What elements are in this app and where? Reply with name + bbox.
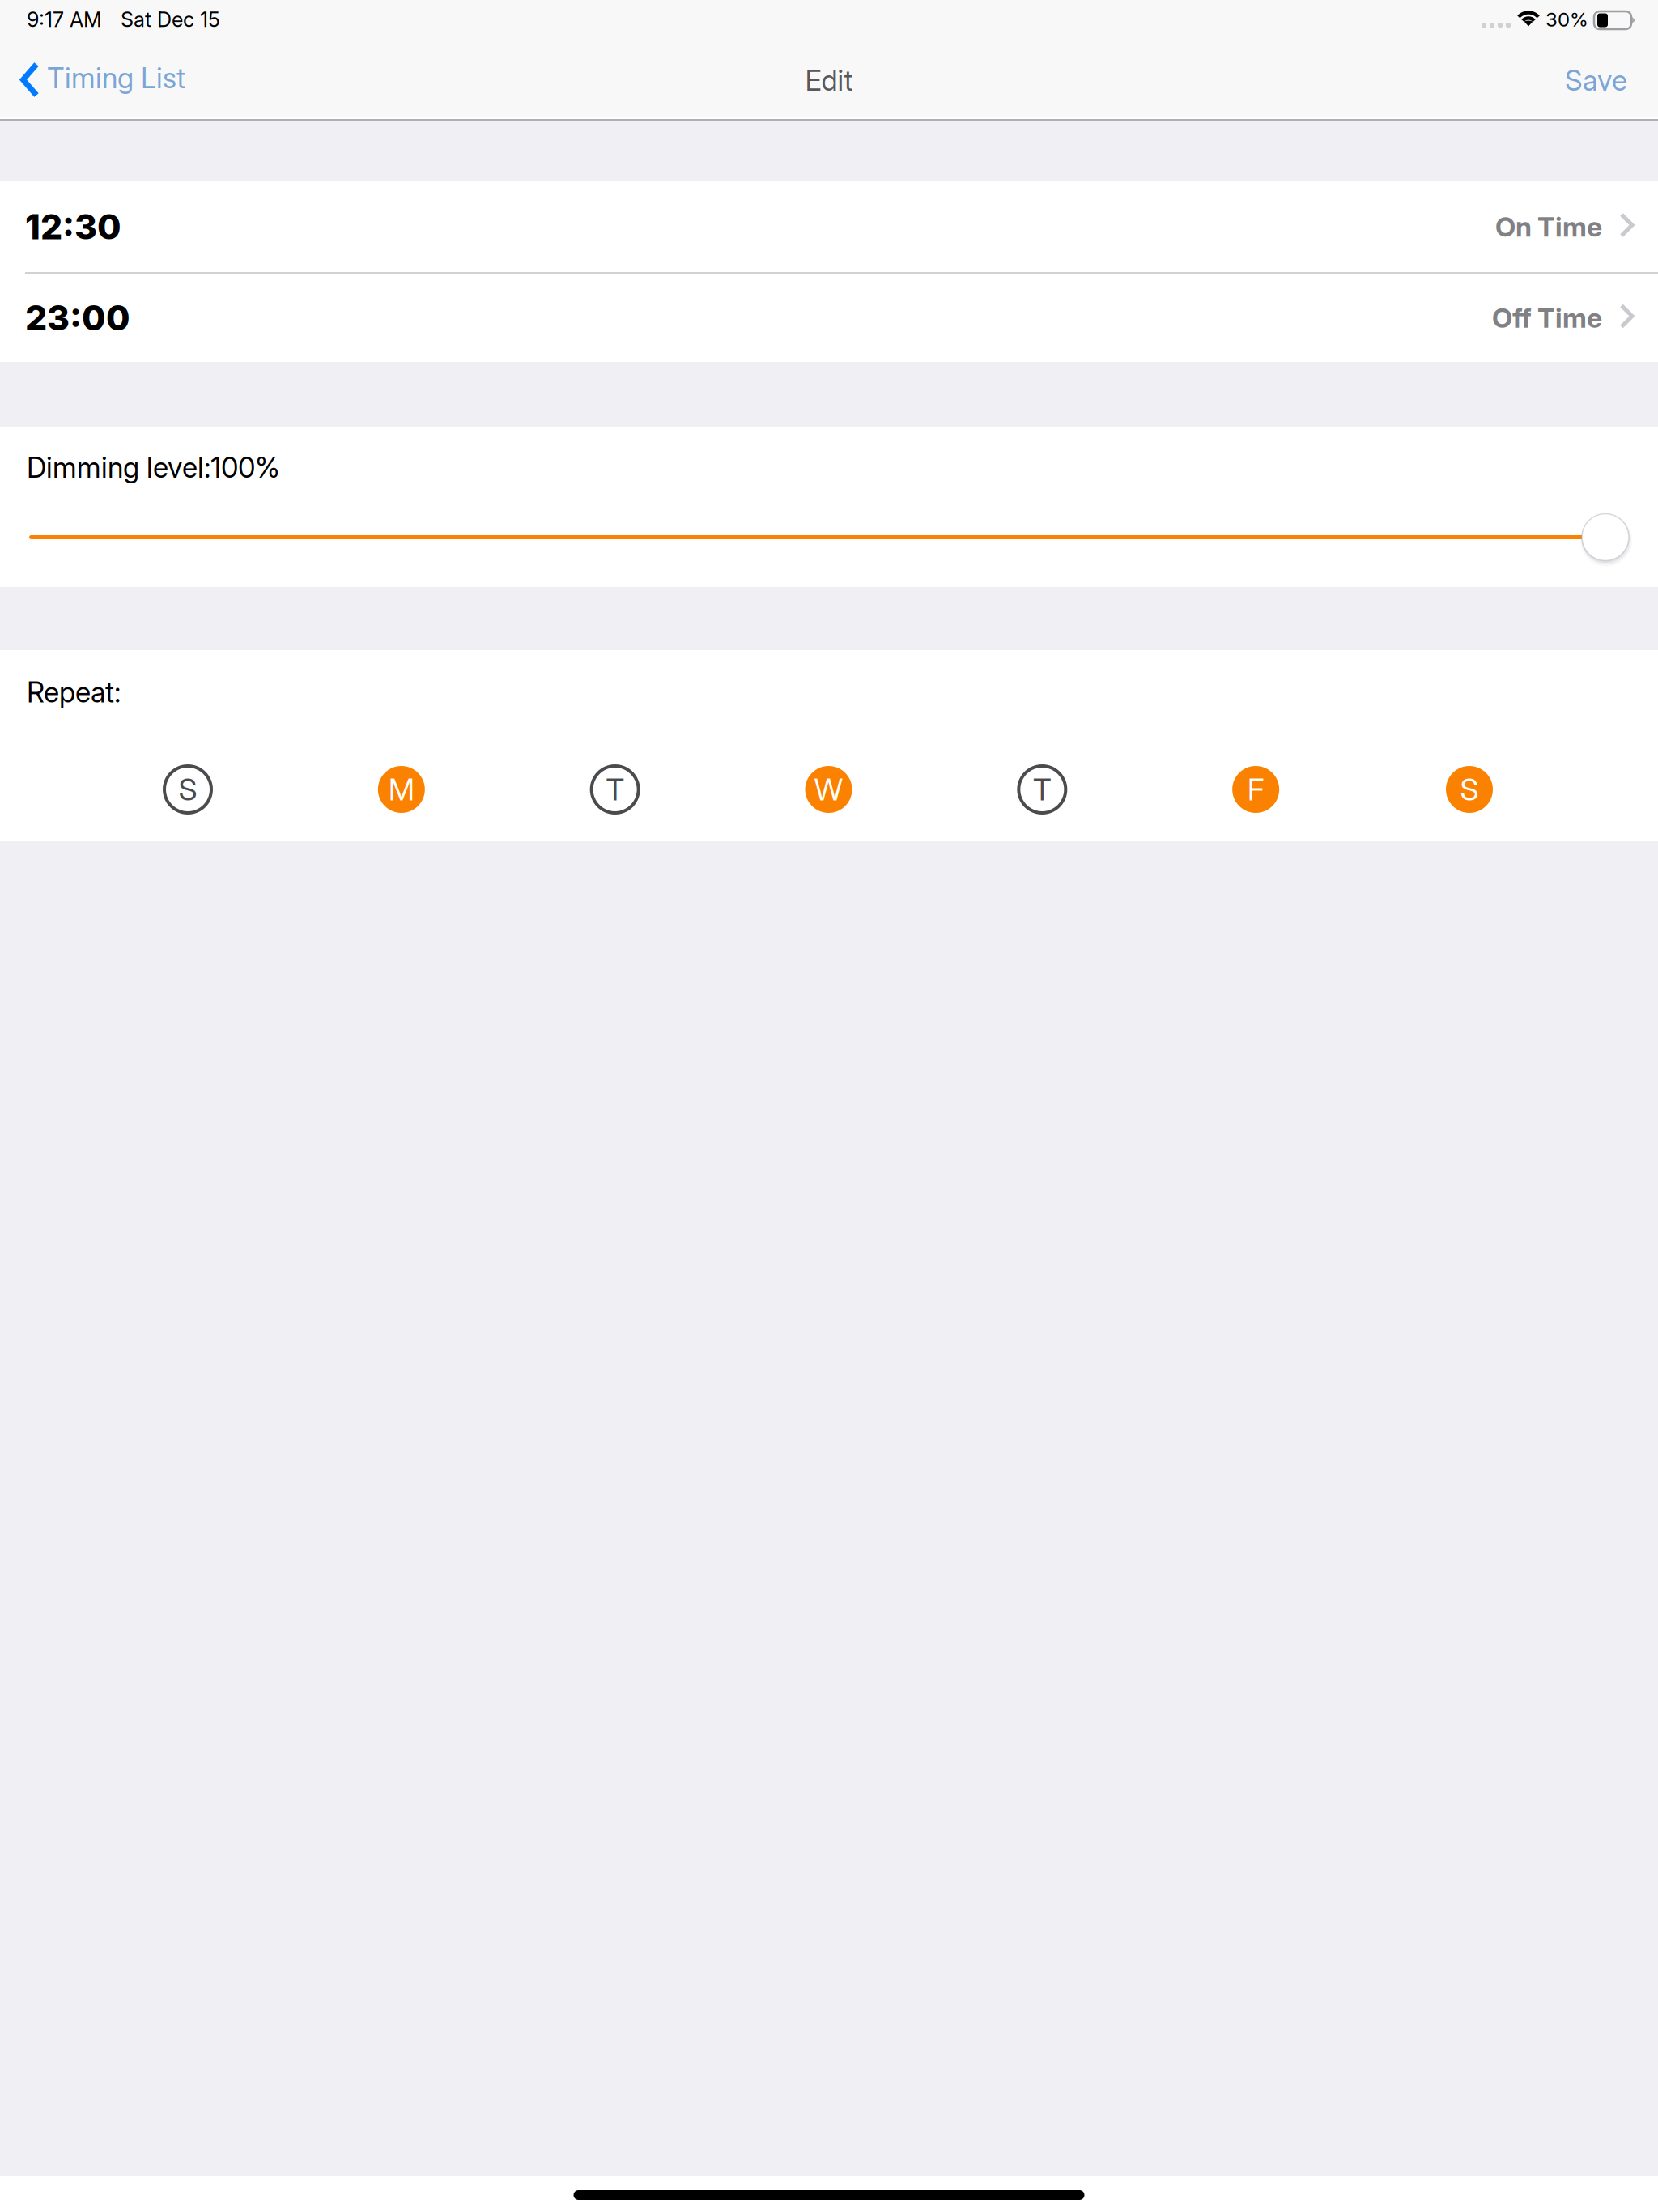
staticText: Sat Dec 15 bbox=[121, 7, 220, 32]
staticText: 9:17 AM bbox=[27, 7, 102, 32]
staticText: Repeat: bbox=[27, 675, 121, 709]
button[interactable]: On bbox=[1219, 752, 1293, 827]
button[interactable]: Save bbox=[1545, 51, 1658, 119]
button[interactable]: 12:30 bbox=[0, 181, 1658, 272]
staticText: Save bbox=[1565, 64, 1627, 97]
button[interactable]: 100% bbox=[0, 496, 1658, 578]
staticText: Dimming level:100% bbox=[27, 451, 280, 485]
button[interactable]: 23:00 bbox=[0, 274, 1658, 362]
staticText: Timing List bbox=[47, 61, 185, 95]
staticText: 12:30 bbox=[25, 206, 121, 248]
staticText: Edit bbox=[805, 64, 853, 97]
staticText: W bbox=[814, 771, 843, 808]
button[interactable]: Off bbox=[1005, 752, 1079, 827]
staticText: On Time bbox=[1495, 210, 1602, 243]
button[interactable]: Off bbox=[151, 752, 225, 827]
staticText: T bbox=[606, 771, 624, 808]
staticText: 30% bbox=[1545, 8, 1588, 31]
staticText: M bbox=[388, 771, 414, 808]
staticText: F bbox=[1247, 771, 1264, 808]
button[interactable]: On bbox=[791, 752, 866, 827]
button[interactable]: Off bbox=[578, 752, 652, 827]
button[interactable]: On bbox=[364, 752, 439, 827]
button[interactable]: On bbox=[1432, 752, 1507, 827]
staticText: Off Time bbox=[1492, 301, 1602, 334]
staticText: T bbox=[1033, 771, 1051, 808]
staticText: 23:00 bbox=[25, 297, 130, 339]
button[interactable]: Timing List bbox=[0, 51, 198, 119]
staticText: S bbox=[179, 771, 197, 808]
staticText: S bbox=[1460, 771, 1479, 808]
